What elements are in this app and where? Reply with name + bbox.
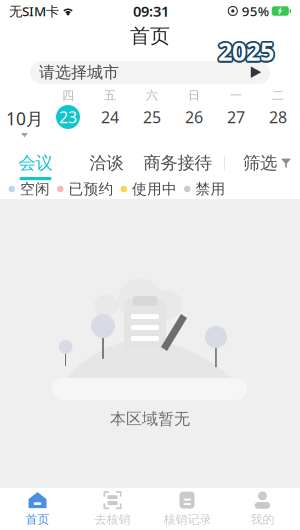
staticText: 10月 xyxy=(6,107,43,130)
button[interactable]: 首页 xyxy=(0,488,75,530)
button[interactable]: 五 xyxy=(89,88,131,135)
staticText: 2025 xyxy=(218,34,274,68)
staticText: 商务接待 xyxy=(143,152,211,174)
staticText: 会议 xyxy=(18,152,52,174)
button[interactable]: 二 xyxy=(257,88,299,135)
button[interactable]: 我的 xyxy=(225,488,300,530)
staticText: 日 xyxy=(188,88,200,103)
staticText: 使用中 xyxy=(132,180,177,198)
staticText: 五 xyxy=(104,88,116,103)
button[interactable]: 日 xyxy=(173,88,215,135)
staticText: 四 xyxy=(62,88,74,103)
button[interactable]: 洽谈 xyxy=(71,155,142,183)
button[interactable]: 10月 xyxy=(0,88,47,135)
staticText: 23 xyxy=(59,106,77,128)
button[interactable]: 四 xyxy=(47,88,89,135)
staticText: 27 xyxy=(227,106,245,128)
staticText: 请选择城市 xyxy=(39,63,119,82)
staticText: 本区域暂无 xyxy=(110,409,190,429)
staticText: 二 xyxy=(272,88,284,103)
button[interactable]: 商务接待 xyxy=(142,155,213,183)
staticText: 2025 xyxy=(218,32,274,66)
staticText: 2025 xyxy=(218,36,274,70)
staticText: 26 xyxy=(185,106,203,128)
staticText: 首页 xyxy=(130,24,170,48)
staticText: 2025 xyxy=(217,35,273,69)
staticText: 2025 xyxy=(216,34,272,68)
button[interactable]: 筛选 xyxy=(243,155,300,171)
staticText: 24 xyxy=(101,106,119,128)
button[interactable]: 六 xyxy=(131,88,173,135)
staticText: 09:31 xyxy=(133,1,169,21)
button[interactable]: 核销记录 xyxy=(150,488,225,530)
staticText: 筛选 xyxy=(243,152,277,174)
staticText: 一 xyxy=(230,88,242,103)
staticText: 无SIM卡 xyxy=(9,2,59,20)
staticText: 我的 xyxy=(250,512,274,527)
button[interactable]: 一 xyxy=(215,88,257,135)
staticText: 2025 xyxy=(217,33,273,66)
staticText: 六 xyxy=(146,88,158,103)
staticText: 空闲 xyxy=(20,180,50,198)
button[interactable]: 去核销 xyxy=(75,488,150,530)
staticText: 25 xyxy=(143,106,161,128)
staticText: 95% xyxy=(242,2,269,20)
staticText: 已预约 xyxy=(68,180,113,198)
staticText: 2025 xyxy=(219,35,275,69)
staticText: 2025 xyxy=(219,33,275,66)
staticText: 核销记录 xyxy=(163,512,211,527)
staticText: 去核销 xyxy=(94,512,130,527)
staticText: 首页 xyxy=(25,512,49,527)
staticText: 2025 xyxy=(220,34,276,68)
staticText: 洽谈 xyxy=(89,152,123,174)
button[interactable]: 请选择城市 xyxy=(30,61,270,84)
staticText: 禁用 xyxy=(195,180,225,198)
staticText: 28 xyxy=(269,106,287,128)
button[interactable]: 会议 xyxy=(0,155,71,183)
